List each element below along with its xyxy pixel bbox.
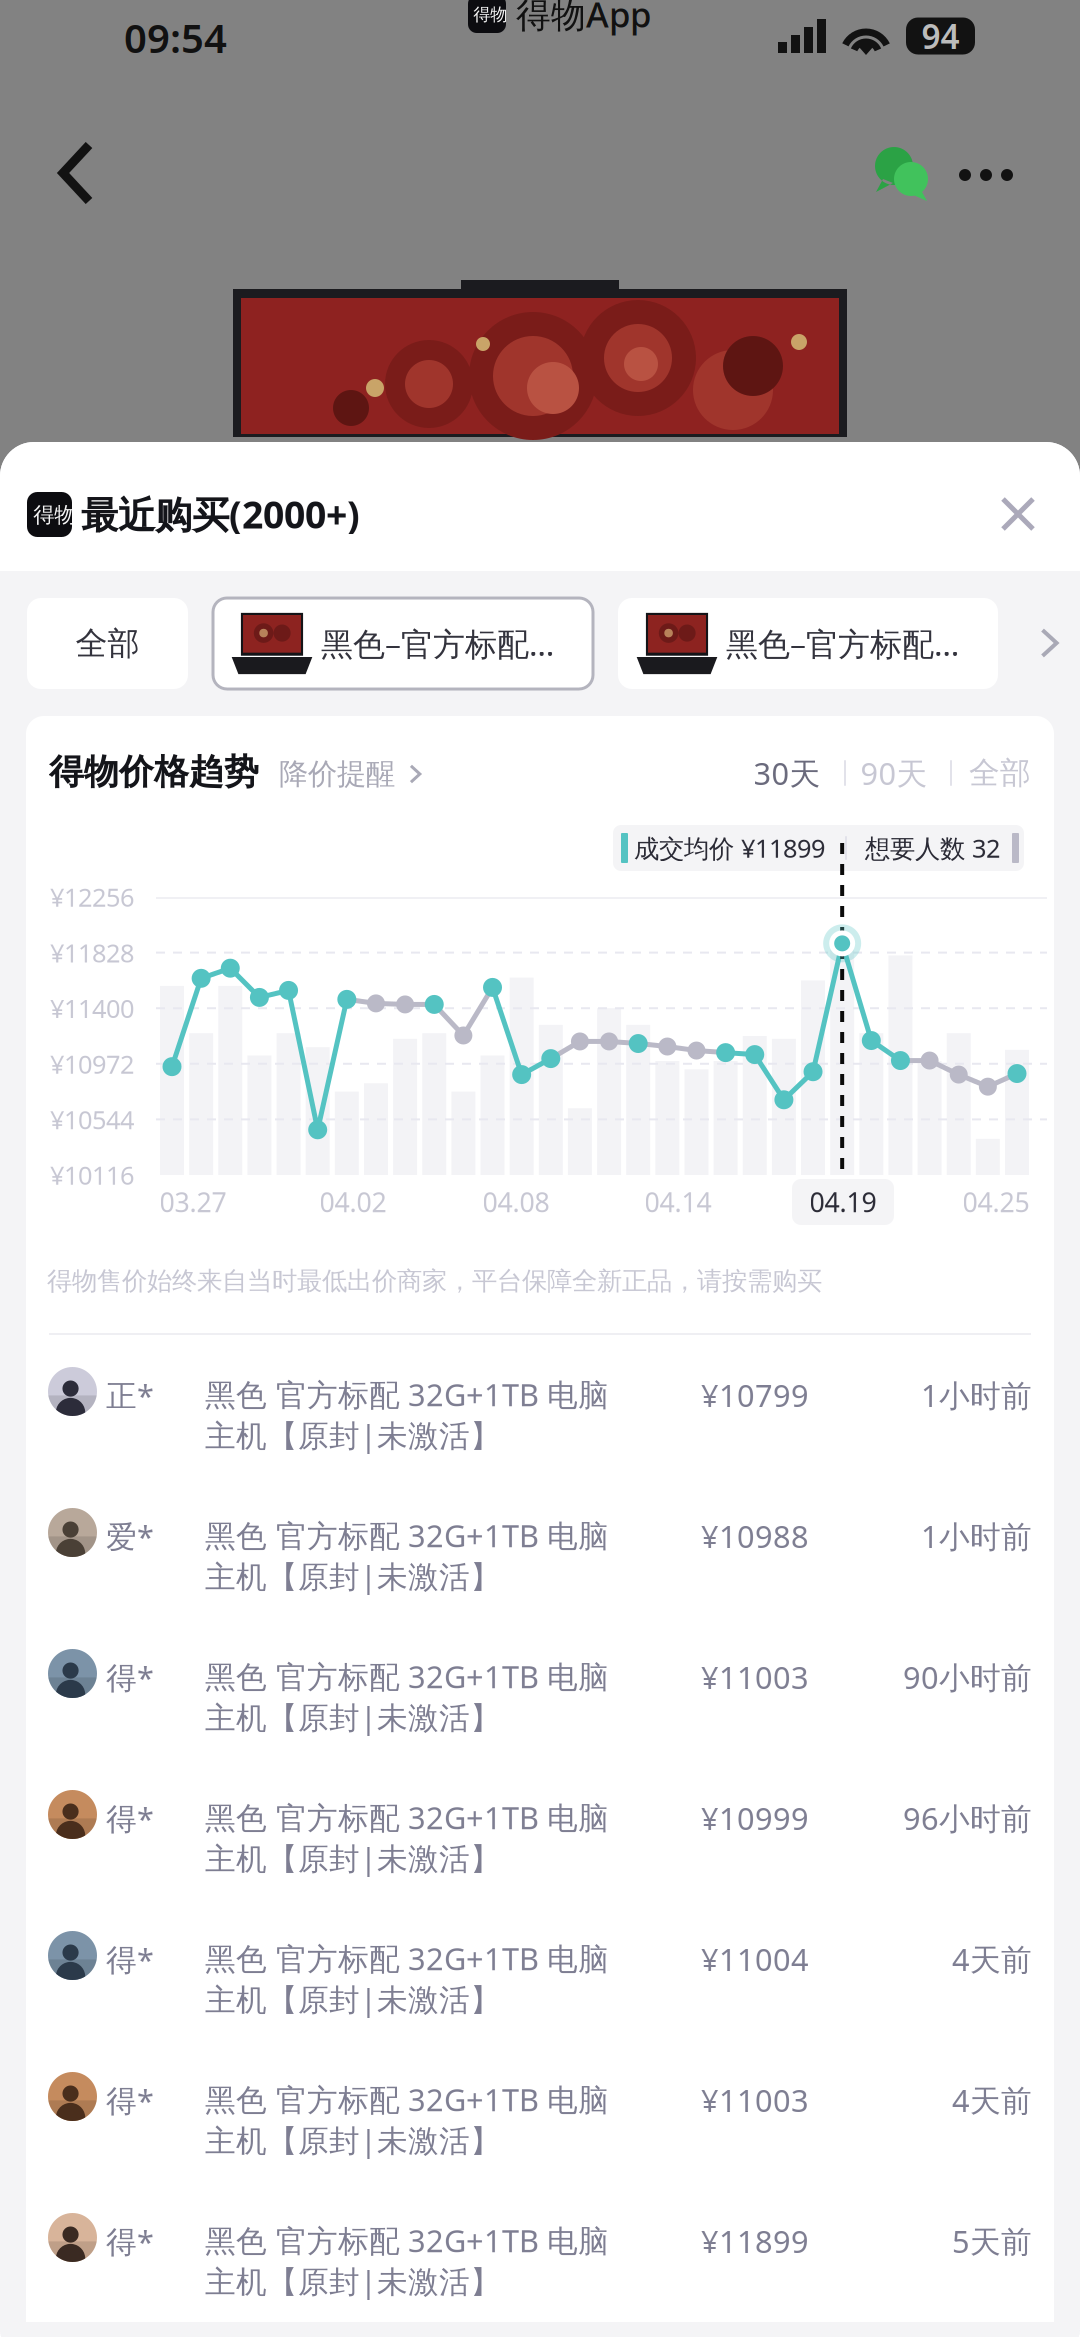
button[interactable]: 黑色–官方标配… — [618, 598, 998, 689]
staticText: 09:54 — [124, 11, 227, 64]
staticText: 想要人数 32 — [865, 831, 1000, 865]
staticText: ¥10999 — [701, 1798, 809, 1838]
button[interactable]: 得* — [26, 2181, 1054, 2322]
staticText: 得物App — [516, 0, 651, 37]
button[interactable]: 全部 — [27, 598, 188, 689]
staticText: 04.08 — [482, 1184, 549, 1220]
staticText: 全部 — [75, 624, 139, 663]
staticText: 94 — [921, 14, 959, 58]
staticText: 全部 — [969, 754, 1031, 792]
staticText: ¥10799 — [701, 1375, 809, 1415]
staticText: 1小时前 — [921, 1516, 1032, 1556]
button[interactable]: 全部 — [955, 750, 1045, 796]
button[interactable]: 得* — [26, 1899, 1054, 2040]
staticText: 04.14 — [644, 1184, 711, 1220]
button[interactable]: 黑色–官方标配… — [213, 598, 593, 689]
staticText: 得* — [106, 1657, 154, 1697]
staticText: 04.25 — [962, 1184, 1029, 1220]
button[interactable]: 爱* — [26, 1476, 1054, 1617]
staticText: ¥10988 — [701, 1516, 809, 1556]
button[interactable]: 得* — [26, 1758, 1054, 1899]
button[interactable]: Back — [28, 125, 124, 221]
staticText: 5天前 — [952, 2221, 1032, 2261]
staticText: 爱* — [106, 1516, 154, 1556]
staticText: ¥10116 — [50, 1158, 134, 1192]
staticText: 得* — [106, 1939, 154, 1979]
staticText: 得* — [106, 1798, 154, 1838]
button[interactable]: 90天 — [849, 750, 939, 796]
staticText: 黑色 官方标配 32G+1TB 电脑 主机【原封|未激活】 — [205, 2079, 609, 2160]
staticText: 最近购买(2000+) — [81, 489, 360, 539]
button[interactable]: 降价提醒 — [279, 752, 449, 796]
staticText: 正* — [106, 1375, 154, 1415]
staticText: ¥11004 — [701, 1939, 809, 1979]
staticText: 成交均价 ¥11899 — [634, 831, 825, 865]
staticText: 4天前 — [952, 2080, 1032, 2120]
staticText: 黑色–官方标配… — [321, 622, 554, 665]
staticText: 黑色 官方标配 32G+1TB 电脑 主机【原封|未激活】 — [205, 1656, 609, 1737]
staticText: 04.19 — [809, 1184, 876, 1220]
staticText: 黑色 官方标配 32G+1TB 电脑 主机【原封|未激活】 — [205, 1515, 609, 1596]
staticText: ¥11003 — [701, 1657, 809, 1697]
button[interactable]: Close — [978, 474, 1058, 554]
staticText: 得物价格趋势 — [49, 751, 259, 793]
button[interactable]: More — [948, 137, 1024, 213]
button[interactable]: Share to WeChat — [858, 130, 948, 220]
staticText: 90天 — [860, 753, 927, 793]
button[interactable]: 正* — [26, 1335, 1054, 1476]
staticText: 黑色 官方标配 32G+1TB 电脑 主机【原封|未激活】 — [205, 1938, 609, 2019]
staticText: 黑色 官方标配 32G+1TB 电脑 主机【原封|未激活】 — [205, 1374, 609, 1455]
button[interactable]: 得* — [26, 2040, 1054, 2181]
staticText: 90小时前 — [903, 1657, 1032, 1697]
staticText: 03.27 — [159, 1184, 226, 1220]
staticText: 04.02 — [319, 1184, 386, 1220]
staticText: ¥11400 — [50, 991, 134, 1025]
staticText: 得* — [106, 2080, 154, 2120]
staticText: 黑色 官方标配 32G+1TB 电脑 主机【原封|未激活】 — [205, 1797, 609, 1878]
staticText: 96小时前 — [903, 1798, 1032, 1838]
staticText: 4天前 — [952, 1939, 1032, 1979]
staticText: 得* — [106, 2221, 154, 2261]
staticText: ¥11003 — [701, 2080, 809, 2120]
button[interactable]: 得* — [26, 1617, 1054, 1758]
staticText: ¥11899 — [701, 2221, 809, 2261]
staticText: ¥12256 — [50, 880, 134, 914]
staticText: ¥11828 — [50, 936, 134, 969]
staticText: ¥10544 — [50, 1103, 134, 1136]
staticText: 30天 — [753, 753, 820, 793]
staticText: 黑色 官方标配 32G+1TB 电脑 主机【原封|未激活】 — [205, 2220, 609, 2301]
button[interactable]: 30天 — [742, 750, 832, 796]
staticText: 1小时前 — [921, 1375, 1032, 1415]
staticText: 黑色–官方标配… — [726, 622, 959, 665]
staticText: 降价提醒 — [279, 756, 395, 792]
staticText: 得物 — [473, 4, 507, 25]
staticText: ¥10972 — [50, 1047, 134, 1081]
staticText: 得物 — [33, 502, 75, 528]
staticText: 得物售价始终来自当时最低出价商家，平台保障全新正品，请按需购买 — [47, 1265, 822, 1296]
